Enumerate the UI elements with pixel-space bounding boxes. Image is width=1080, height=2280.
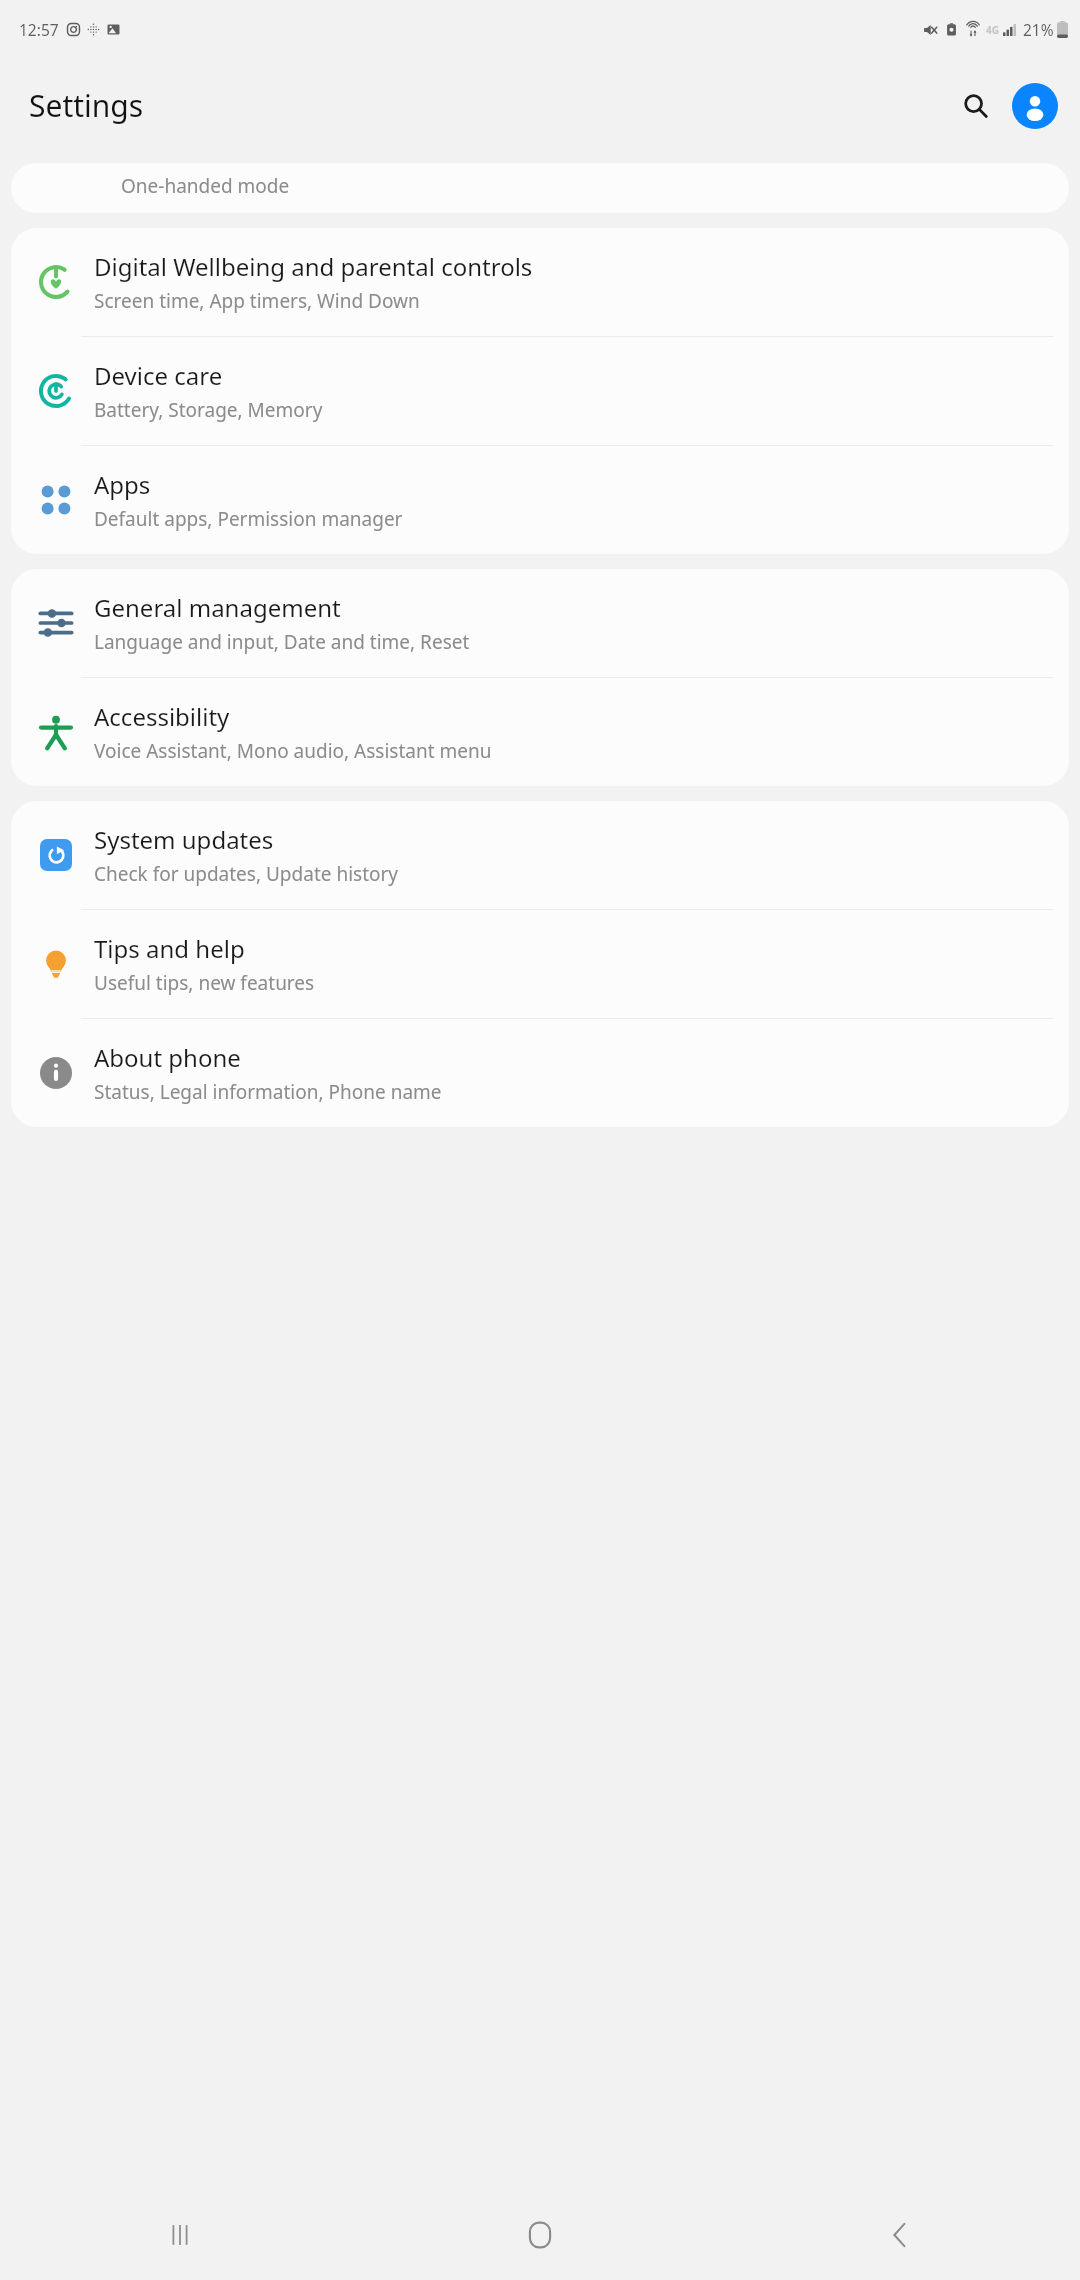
- button[interactable]: Recent apps: [0, 2190, 360, 2280]
- staticText: About phone: [94, 1041, 241, 1074]
- button[interactable]: Digital Wellbeing and parental controls: [11, 228, 1069, 336]
- button[interactable]: About phone: [11, 1019, 1069, 1127]
- button[interactable]: Tips and help: [11, 910, 1069, 1018]
- staticText: Settings: [29, 85, 144, 126]
- button[interactable]: Account: [1012, 83, 1058, 129]
- staticText: Device care: [94, 359, 223, 392]
- staticText: Digital Wellbeing and parental controls: [94, 250, 533, 283]
- staticText: Check for updates, Update history: [94, 861, 399, 887]
- button[interactable]: Search: [952, 82, 1000, 130]
- staticText: Status, Legal information, Phone name: [94, 1079, 442, 1105]
- staticText: Tips and help: [94, 932, 245, 965]
- staticText: Default apps, Permission manager: [94, 506, 403, 532]
- button[interactable]: Apps: [11, 446, 1069, 554]
- staticText: Language and input, Date and time, Reset: [94, 629, 470, 655]
- button[interactable]: General management: [11, 569, 1069, 677]
- button[interactable]: Device care: [11, 337, 1069, 445]
- staticText: Voice Assistant, Mono audio, Assistant m…: [94, 738, 492, 764]
- button[interactable]: One-handed mode: [11, 163, 1069, 213]
- staticText: 12:57: [19, 19, 59, 40]
- staticText: General management: [94, 591, 341, 624]
- button[interactable]: Accessibility: [11, 678, 1069, 786]
- staticText: Accessibility: [94, 700, 230, 733]
- staticText: System updates: [94, 823, 274, 856]
- staticText: Screen time, App timers, Wind Down: [94, 288, 420, 314]
- button[interactable]: System updates: [11, 801, 1069, 909]
- staticText: Battery, Storage, Memory: [94, 397, 323, 423]
- staticText: One-handed mode: [121, 173, 290, 199]
- button[interactable]: Back: [720, 2190, 1080, 2280]
- staticText: Apps: [94, 468, 151, 501]
- staticText: Useful tips, new features: [94, 970, 315, 996]
- button[interactable]: Home: [360, 2190, 720, 2280]
- staticText: 21%: [1023, 19, 1054, 40]
- staticText: 4G: [986, 23, 999, 37]
